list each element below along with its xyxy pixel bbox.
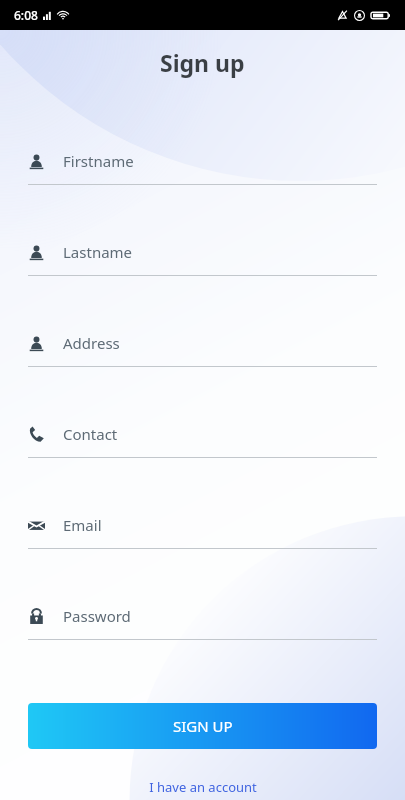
button[interactable]: Password [0,593,405,684]
staticText: 6:08 [14,7,38,23]
staticText: Lastname [63,242,133,262]
button[interactable]: Firstname [0,138,405,229]
staticText: Sign up [160,47,245,78]
button[interactable]: SIGN UP [28,703,377,749]
staticText: Address [63,333,120,353]
staticText: SIGN UP [173,716,233,736]
staticText: Email [63,515,102,535]
staticText: Password [63,606,131,626]
button[interactable]: Address [0,320,405,411]
other: Silent mode [337,10,348,21]
button[interactable]: Email [0,502,405,593]
staticText: Contact [63,424,118,444]
other: Status icon [354,10,365,21]
staticText: I have an account [149,778,257,796]
button[interactable]: Contact [0,411,405,502]
button[interactable]: Lastname [0,229,405,320]
button[interactable]: I have an account [0,778,405,796]
staticText: Firstname [63,151,134,171]
other: Battery [371,10,391,21]
